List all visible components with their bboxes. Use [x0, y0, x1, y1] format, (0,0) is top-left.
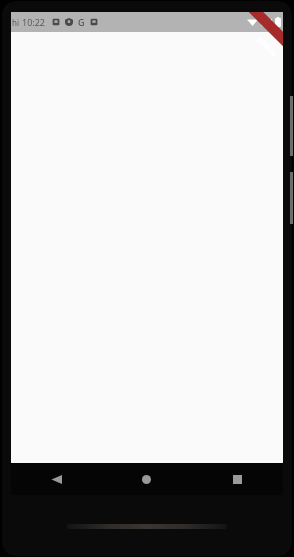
button[interactable]: Recent apps [192, 463, 283, 495]
button[interactable]: Home [101, 463, 192, 495]
staticText: G [78, 16, 85, 28]
button[interactable]: Back [11, 463, 101, 495]
staticText: 10:22 [22, 16, 46, 28]
staticText: DEBUG [254, 35, 279, 59]
staticText: hi [12, 17, 20, 28]
